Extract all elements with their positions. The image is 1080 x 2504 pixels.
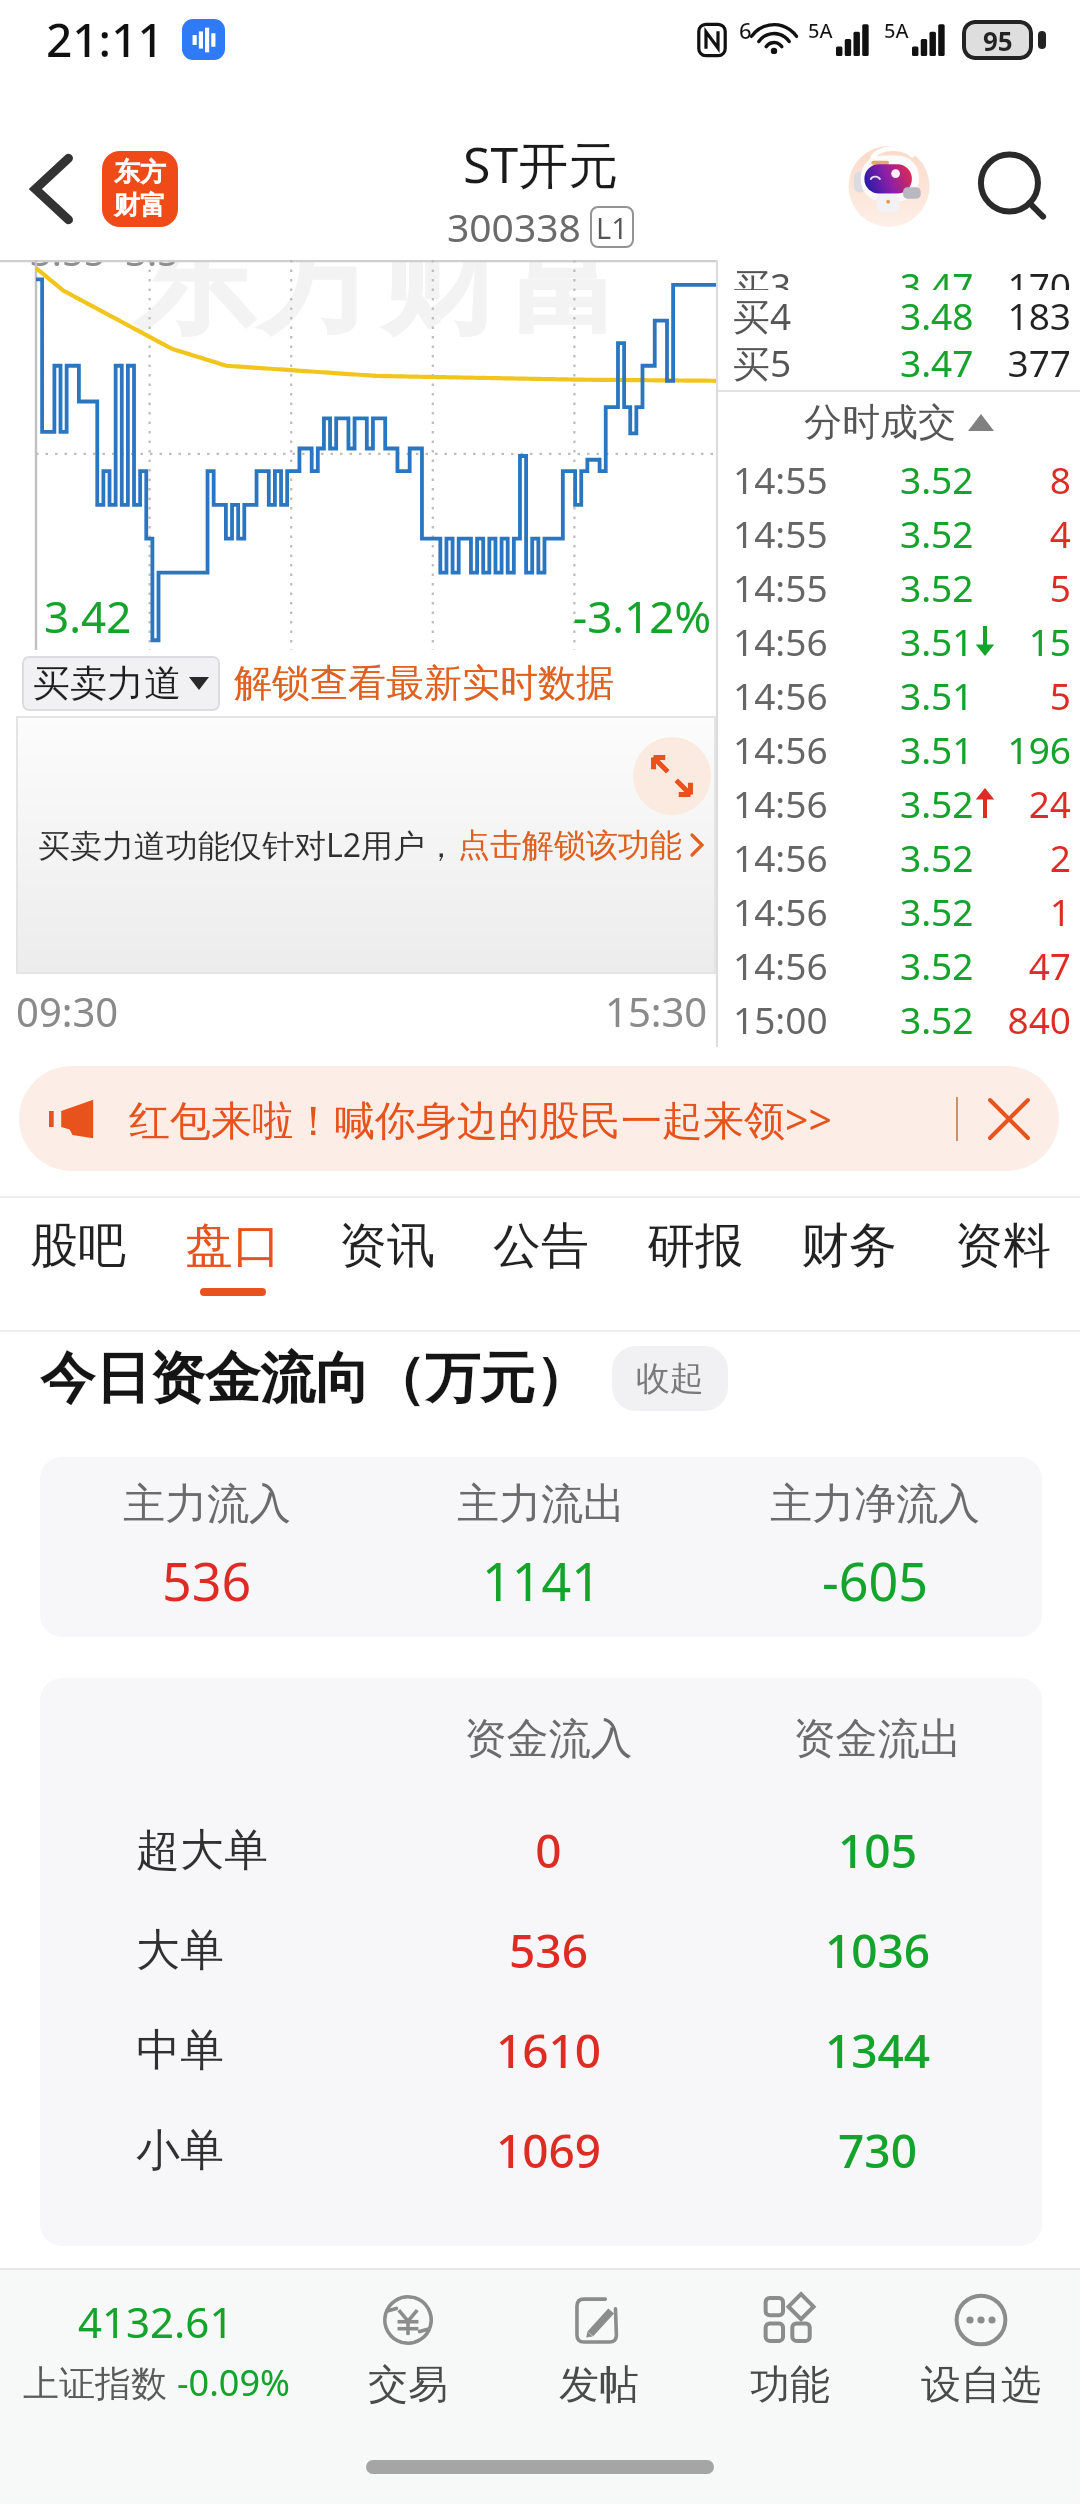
staticText: 14:55	[733, 508, 888, 558]
button[interactable]: Expand chart	[633, 737, 711, 815]
button[interactable]: East Money home	[102, 151, 178, 227]
button[interactable]: 4132.61	[0, 2270, 312, 2430]
button[interactable]: 解锁查看最新实时数据	[234, 659, 614, 707]
staticText: 买卖力道	[33, 660, 181, 707]
staticText: 300338	[447, 200, 581, 253]
staticText: 买卖力道功能仅针对L2用户，	[38, 823, 458, 867]
staticText: 买5	[733, 337, 888, 384]
button[interactable]: 分时成交	[718, 392, 1080, 452]
button[interactable]: 资料	[926, 1196, 1080, 1332]
staticText: 3.51	[900, 724, 974, 774]
button[interactable]: Back	[0, 118, 102, 260]
staticText: 730	[713, 2119, 1042, 2182]
button[interactable]: 红包来啦！喊你身边的股民一起来领>>	[19, 1066, 1059, 1171]
button[interactable]: 财务	[772, 1196, 926, 1332]
staticText: 主力净流入	[770, 1478, 980, 1531]
staticText: 2	[996, 832, 1071, 882]
staticText: 3.52	[900, 508, 974, 558]
staticText: 买4	[733, 290, 888, 337]
staticText: 设自选	[921, 2359, 1041, 2409]
staticText: 小单	[136, 2123, 224, 2178]
staticText: 3.52	[900, 886, 974, 936]
button[interactable]: Expand chart	[16, 716, 716, 974]
staticText: 14:55	[733, 562, 888, 612]
staticText: 4	[996, 508, 1071, 558]
staticText: -605	[822, 1545, 928, 1616]
button[interactable]: 交易	[312, 2270, 503, 2430]
staticText: 盘口	[185, 1216, 281, 1276]
staticText: -3.12%	[573, 586, 712, 646]
staticText: -0.09%	[177, 2358, 290, 2407]
button[interactable]: 点击解锁该功能	[458, 825, 682, 865]
button[interactable]: 买3	[718, 260, 1080, 290]
button[interactable]: 14:56	[718, 938, 1080, 992]
button[interactable]: AI assistant	[830, 118, 948, 260]
staticText: 1	[996, 886, 1071, 936]
staticText: 东方	[114, 156, 166, 189]
staticText: 买3	[733, 260, 888, 290]
staticText: 14:56	[733, 940, 888, 990]
staticText: 大单	[136, 1923, 224, 1978]
staticText: 功能	[750, 2359, 830, 2409]
button[interactable]: Close banner	[981, 1091, 1037, 1147]
button[interactable]: 买卖力道	[22, 656, 220, 711]
staticText: 24	[996, 778, 1071, 828]
staticText: 8	[996, 454, 1071, 504]
staticText: 170	[996, 260, 1071, 290]
staticText: 14:56	[733, 832, 888, 882]
staticText: 资金流入	[384, 1713, 713, 1766]
button[interactable]: 盘口	[155, 1196, 310, 1332]
staticText: 3.47	[900, 337, 974, 384]
staticText: 东方财富	[132, 260, 628, 358]
button[interactable]: 买4	[718, 290, 1080, 337]
staticText: 超大单	[136, 1823, 268, 1878]
staticText: 3.52	[900, 994, 974, 1044]
staticText: 3.52	[900, 832, 974, 882]
button[interactable]: 14:56	[718, 884, 1080, 938]
staticText: 1036	[713, 1919, 1042, 1982]
button[interactable]: 收起	[612, 1346, 728, 1411]
staticText: 3.52	[900, 562, 974, 612]
staticText: 3.52	[900, 940, 974, 990]
button[interactable]: 公告	[464, 1196, 618, 1332]
staticText: 上证指数	[23, 2358, 177, 2407]
button[interactable]: 14:56	[718, 776, 1080, 830]
staticText: 3.51	[900, 616, 974, 666]
button[interactable]: Search	[948, 118, 1080, 260]
button[interactable]: 14:56	[718, 668, 1080, 722]
button[interactable]: 15:00	[718, 992, 1080, 1046]
button[interactable]: Intraday price chart	[0, 260, 716, 650]
button[interactable]: 买5	[718, 337, 1080, 384]
staticText: 3.42	[44, 586, 132, 646]
button[interactable]: 资讯	[310, 1196, 464, 1332]
button[interactable]: 发帖	[503, 2270, 694, 2430]
staticText: 840	[996, 994, 1071, 1044]
button[interactable]: 14:55	[718, 452, 1080, 506]
staticText: 红包来啦！喊你身边的股民一起来领>>	[129, 1091, 832, 1147]
staticText: 分时成交	[804, 398, 956, 446]
staticText: 1141	[482, 1545, 601, 1616]
staticText: L1	[596, 208, 628, 247]
staticText: 主力流出	[457, 1478, 625, 1531]
staticText: 3.51	[900, 670, 974, 720]
button[interactable]: 14:56	[718, 830, 1080, 884]
staticText: 14:56	[733, 616, 888, 666]
button[interactable]: 设自选	[885, 2270, 1076, 2430]
staticText: 1344	[713, 2019, 1042, 2082]
button[interactable]: 14:55	[718, 560, 1080, 614]
button[interactable]: 研报	[618, 1196, 772, 1332]
staticText: 财务	[801, 1216, 897, 1276]
staticText: 196	[996, 724, 1071, 774]
staticText: 14:56	[733, 778, 888, 828]
button[interactable]: 14:56	[718, 722, 1080, 776]
staticText: 6	[739, 15, 752, 45]
button[interactable]: 股吧	[0, 1196, 155, 1332]
staticText: 09:30	[16, 984, 119, 1038]
staticText: 15	[996, 616, 1071, 666]
button[interactable]: 功能	[694, 2270, 885, 2430]
staticText: 4132.61	[78, 2293, 234, 2350]
staticText: 收起	[636, 1357, 704, 1400]
staticText: 交易	[368, 2359, 448, 2409]
button[interactable]: 14:56	[718, 614, 1080, 668]
button[interactable]: 14:55	[718, 506, 1080, 560]
